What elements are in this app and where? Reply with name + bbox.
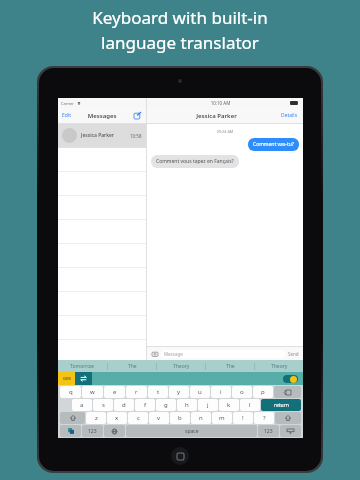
staticText: Message — [164, 351, 183, 357]
staticText: g — [164, 401, 168, 409]
staticText: u — [198, 388, 202, 396]
staticText: language translator — [101, 31, 259, 54]
staticText: n — [199, 414, 203, 422]
button[interactable]: 123 — [258, 425, 279, 437]
button[interactable]: f — [135, 399, 155, 411]
button[interactable]: Edit — [62, 112, 71, 119]
button[interactable]: The — [206, 360, 254, 372]
button[interactable]: z — [86, 412, 106, 424]
button[interactable]: h — [177, 399, 197, 411]
staticText: m — [219, 414, 225, 422]
staticText: Comment vas-tu? — [253, 141, 294, 148]
button[interactable]: o — [232, 386, 252, 398]
button[interactable]: u — [190, 386, 210, 398]
button[interactable]: Theory — [255, 360, 303, 372]
staticText: c — [137, 414, 140, 422]
button[interactable]: Jessica Parker — [62, 124, 142, 147]
staticText: return — [274, 402, 289, 409]
button[interactable]: Message — [164, 350, 282, 358]
button[interactable]: g — [156, 399, 176, 411]
button[interactable]: c — [128, 412, 148, 424]
button[interactable]: Theory — [157, 360, 205, 372]
staticText: 09:24 AM — [151, 129, 299, 134]
staticText: p — [261, 388, 265, 396]
button[interactable]: k — [219, 399, 239, 411]
button[interactable]: n — [191, 412, 211, 424]
button[interactable]: y — [169, 386, 189, 398]
staticText: Jessica Parker — [81, 132, 114, 139]
button[interactable]: w — [82, 386, 103, 398]
staticText: The — [226, 363, 235, 370]
staticText: s — [102, 401, 105, 409]
staticText: 10:10 AM — [151, 100, 290, 106]
staticText: o — [240, 388, 244, 396]
button[interactable]: Details — [281, 112, 298, 119]
button[interactable]: m — [212, 412, 232, 424]
button[interactable]: p — [253, 386, 273, 398]
button[interactable]: Change language — [104, 425, 125, 437]
button[interactable]: space — [126, 425, 257, 437]
button[interactable]: Comment vous tapez en Fançais? — [156, 158, 234, 165]
button[interactable]: The — [108, 360, 156, 372]
button[interactable]: Comment vas-tu? — [253, 141, 294, 148]
staticText: Theory — [173, 363, 190, 370]
staticText: a — [80, 401, 84, 409]
button[interactable]: Camera — [151, 350, 158, 357]
button[interactable]: Home — [171, 447, 189, 465]
button[interactable]: Shift — [275, 412, 301, 424]
button[interactable]: Hide keyboard — [280, 425, 301, 437]
staticText: w — [90, 388, 95, 396]
button[interactable]: Compose — [133, 111, 142, 120]
staticText: space — [185, 428, 199, 435]
button[interactable]: x — [107, 412, 127, 424]
button[interactable]: r — [126, 386, 147, 398]
button[interactable]: t — [148, 386, 168, 398]
button[interactable]: Send — [288, 351, 299, 357]
button[interactable]: q — [60, 386, 81, 398]
staticText: 123 — [88, 428, 97, 435]
staticText: l — [249, 401, 251, 409]
button[interactable]: j — [198, 399, 218, 411]
button[interactable]: 123 — [82, 425, 103, 437]
button[interactable]: Swap languages — [75, 372, 92, 385]
button[interactable]: Translate app — [60, 425, 81, 437]
button[interactable]: GER — [58, 372, 75, 385]
button[interactable]: return — [261, 399, 301, 411]
button[interactable]: l — [240, 399, 260, 411]
staticText: t — [157, 388, 160, 396]
staticText: Edit — [62, 112, 71, 119]
staticText: f — [144, 401, 147, 409]
button[interactable]: v — [149, 412, 169, 424]
button[interactable]: ! — [233, 412, 253, 424]
button[interactable]: Translation toggle — [283, 375, 298, 383]
staticText: i — [220, 388, 222, 396]
staticText: d — [122, 401, 126, 409]
staticText: j — [207, 401, 209, 409]
button[interactable]: Tomorrow — [58, 360, 107, 372]
staticText: b — [178, 414, 182, 422]
staticText: Send — [288, 351, 299, 357]
staticText: 123 — [264, 428, 273, 435]
button[interactable]: i — [211, 386, 231, 398]
button[interactable]: s — [93, 399, 113, 411]
button[interactable]: b — [170, 412, 190, 424]
staticText: The — [128, 363, 137, 370]
button[interactable]: Backspace — [274, 386, 301, 398]
button[interactable]: e — [104, 386, 125, 398]
button[interactable]: a — [72, 399, 92, 411]
staticText: k — [227, 401, 231, 409]
button[interactable]: Shift — [60, 412, 85, 424]
staticText: ? — [263, 414, 266, 422]
button[interactable]: ? — [254, 412, 274, 424]
staticText: Tomorrow — [70, 363, 95, 370]
button[interactable]: d — [114, 399, 134, 411]
